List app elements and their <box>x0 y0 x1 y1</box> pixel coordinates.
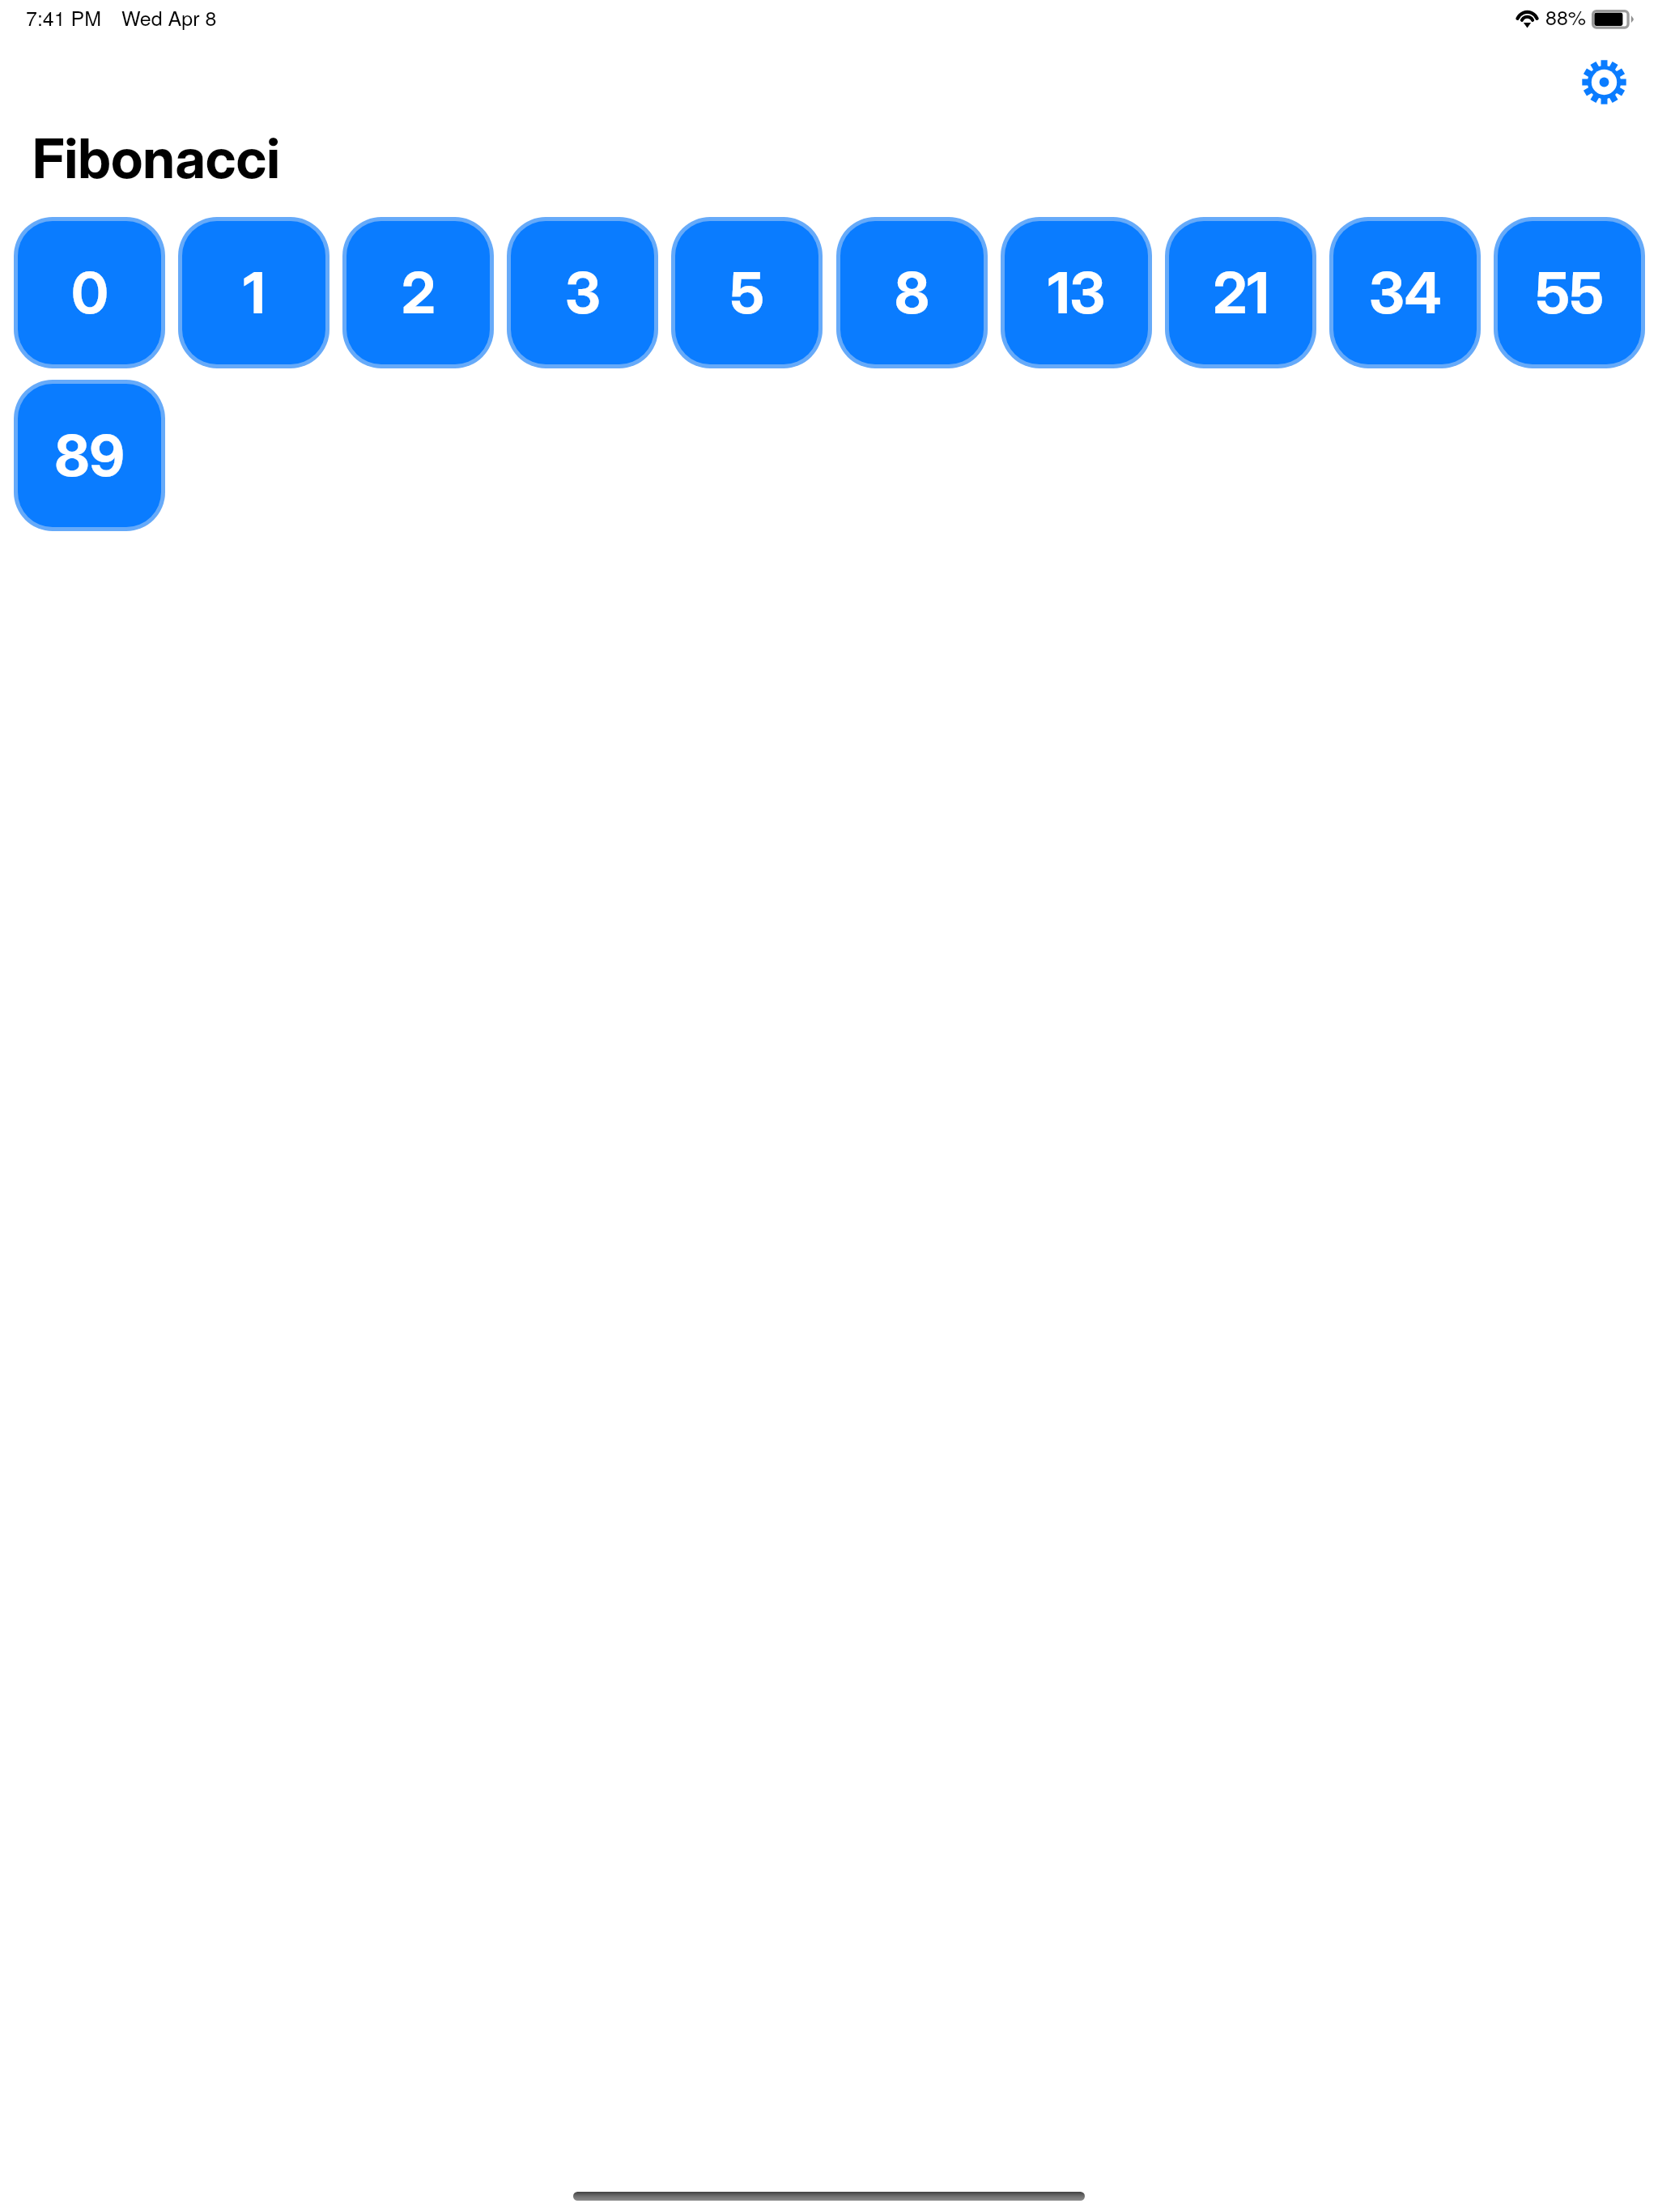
staticText: 55 <box>1536 258 1604 327</box>
button[interactable]: 0 <box>18 221 161 364</box>
button[interactable]: 8 <box>840 221 984 364</box>
staticText: 13 <box>1048 258 1105 327</box>
staticText: 3 <box>565 258 601 327</box>
staticText: 5 <box>730 258 764 327</box>
button[interactable]: 89 <box>18 384 161 527</box>
staticText: 8 <box>895 258 929 327</box>
staticText: 89 <box>54 421 125 490</box>
staticText: 0 <box>71 258 108 327</box>
button[interactable]: 3 <box>511 221 654 364</box>
staticText: 21 <box>1213 258 1269 327</box>
staticText: Wed Apr 8 <box>121 2 217 32</box>
button[interactable]: 1 <box>182 221 325 364</box>
staticText: 34 <box>1369 258 1442 327</box>
button[interactable]: 2 <box>346 221 490 364</box>
button[interactable]: 13 <box>1005 221 1148 364</box>
staticText: 2 <box>402 258 436 327</box>
staticText: 7:41 PM <box>26 2 102 32</box>
button[interactable]: 55 <box>1498 221 1641 364</box>
staticText: 1 <box>243 258 266 327</box>
button[interactable]: Settings <box>1577 55 1630 108</box>
staticText: 88% <box>1545 2 1587 31</box>
button[interactable]: 34 <box>1333 221 1477 364</box>
button[interactable]: 21 <box>1169 221 1312 364</box>
button[interactable]: 5 <box>675 221 818 364</box>
staticText: Fibonacci <box>32 125 280 191</box>
